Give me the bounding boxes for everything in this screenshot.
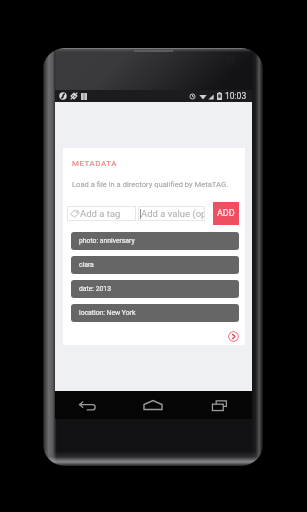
staticText: ADD <box>217 208 235 219</box>
staticText: Load a file in a directory qualified by … <box>72 180 229 189</box>
button[interactable]: Add a value (op <box>138 206 205 221</box>
button[interactable]: Recents <box>186 391 252 419</box>
button[interactable]: date: 2013 <box>71 280 239 298</box>
button[interactable]: Back <box>55 391 120 419</box>
staticText: photo: anniversary <box>79 237 135 245</box>
staticText: Add a tag <box>80 208 121 219</box>
staticText: clara <box>79 261 94 269</box>
button[interactable]: ADD <box>213 202 239 225</box>
button[interactable]: Add a tag <box>67 206 136 221</box>
staticText: Add a value (op <box>141 208 205 219</box>
button[interactable]: photo: anniversary <box>71 232 239 250</box>
button[interactable]: Next <box>228 331 239 342</box>
button[interactable]: Home <box>120 391 186 419</box>
staticText: 10:03 <box>225 91 247 101</box>
staticText: location: New York <box>79 309 136 317</box>
button[interactable]: location: New York <box>71 304 239 322</box>
button[interactable]: clara <box>71 256 239 274</box>
staticText: METADATA <box>72 159 117 168</box>
staticText: date: 2013 <box>79 285 111 293</box>
